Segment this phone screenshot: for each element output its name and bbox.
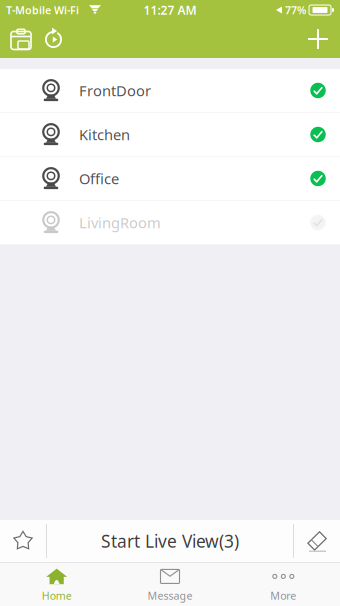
button[interactable]: Devices [6,29,36,49]
staticText: Message [147,588,192,603]
button[interactable]: Kitchen [0,113,340,157]
staticText: Kitchen [79,125,130,144]
button[interactable]: Home [0,563,113,606]
button[interactable]: Erase [294,520,340,562]
staticText: LivingRoom [79,213,161,232]
button[interactable]: History [39,29,69,49]
button[interactable]: Start Live View(3) [47,520,293,562]
button[interactable]: Message [113,563,227,606]
button[interactable]: LivingRoom [0,201,340,245]
button[interactable]: FrontDoor [0,69,340,113]
staticText: T-Mobile Wi-Fi [6,3,79,17]
staticText: Office [79,169,119,188]
staticText: Start Live View(3) [101,529,239,552]
staticText: Home [42,588,72,603]
staticText: 11:27 AM [143,2,196,18]
button[interactable]: Favorite [0,520,46,562]
button[interactable]: More [227,563,340,606]
staticText: 77% [285,3,306,17]
staticText: More [270,588,296,603]
button[interactable]: Add [302,27,334,51]
staticText: FrontDoor [79,81,151,100]
button[interactable]: Office [0,157,340,201]
